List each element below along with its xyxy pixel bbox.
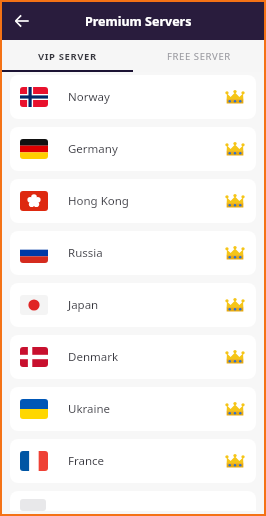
button[interactable]: Norway bbox=[10, 75, 256, 119]
button[interactable]: Japan bbox=[10, 283, 256, 327]
button[interactable]: Back bbox=[8, 7, 36, 35]
staticText: Japan bbox=[68, 297, 99, 313]
button[interactable]: Hong Kong bbox=[10, 179, 256, 223]
staticText: Ukraine bbox=[68, 401, 111, 417]
button[interactable]: France bbox=[10, 439, 256, 483]
button[interactable]: Denmark bbox=[10, 335, 256, 379]
staticText: France bbox=[68, 453, 105, 469]
button[interactable]: FREE SERVER bbox=[133, 40, 264, 72]
staticText: VIP SERVER bbox=[38, 50, 97, 63]
staticText: Hong Kong bbox=[68, 193, 129, 209]
staticText: Norway bbox=[68, 89, 110, 105]
button[interactable] bbox=[10, 491, 256, 511]
button[interactable]: VIP SERVER bbox=[2, 40, 133, 72]
staticText: Denmark bbox=[68, 349, 119, 365]
staticText: Premium Servers bbox=[85, 13, 192, 30]
button[interactable]: Ukraine bbox=[10, 387, 256, 431]
staticText: Germany bbox=[68, 141, 118, 157]
staticText: FREE SERVER bbox=[167, 50, 231, 63]
button[interactable]: Russia bbox=[10, 231, 256, 275]
staticText: Russia bbox=[68, 245, 103, 261]
button[interactable]: Germany bbox=[10, 127, 256, 171]
